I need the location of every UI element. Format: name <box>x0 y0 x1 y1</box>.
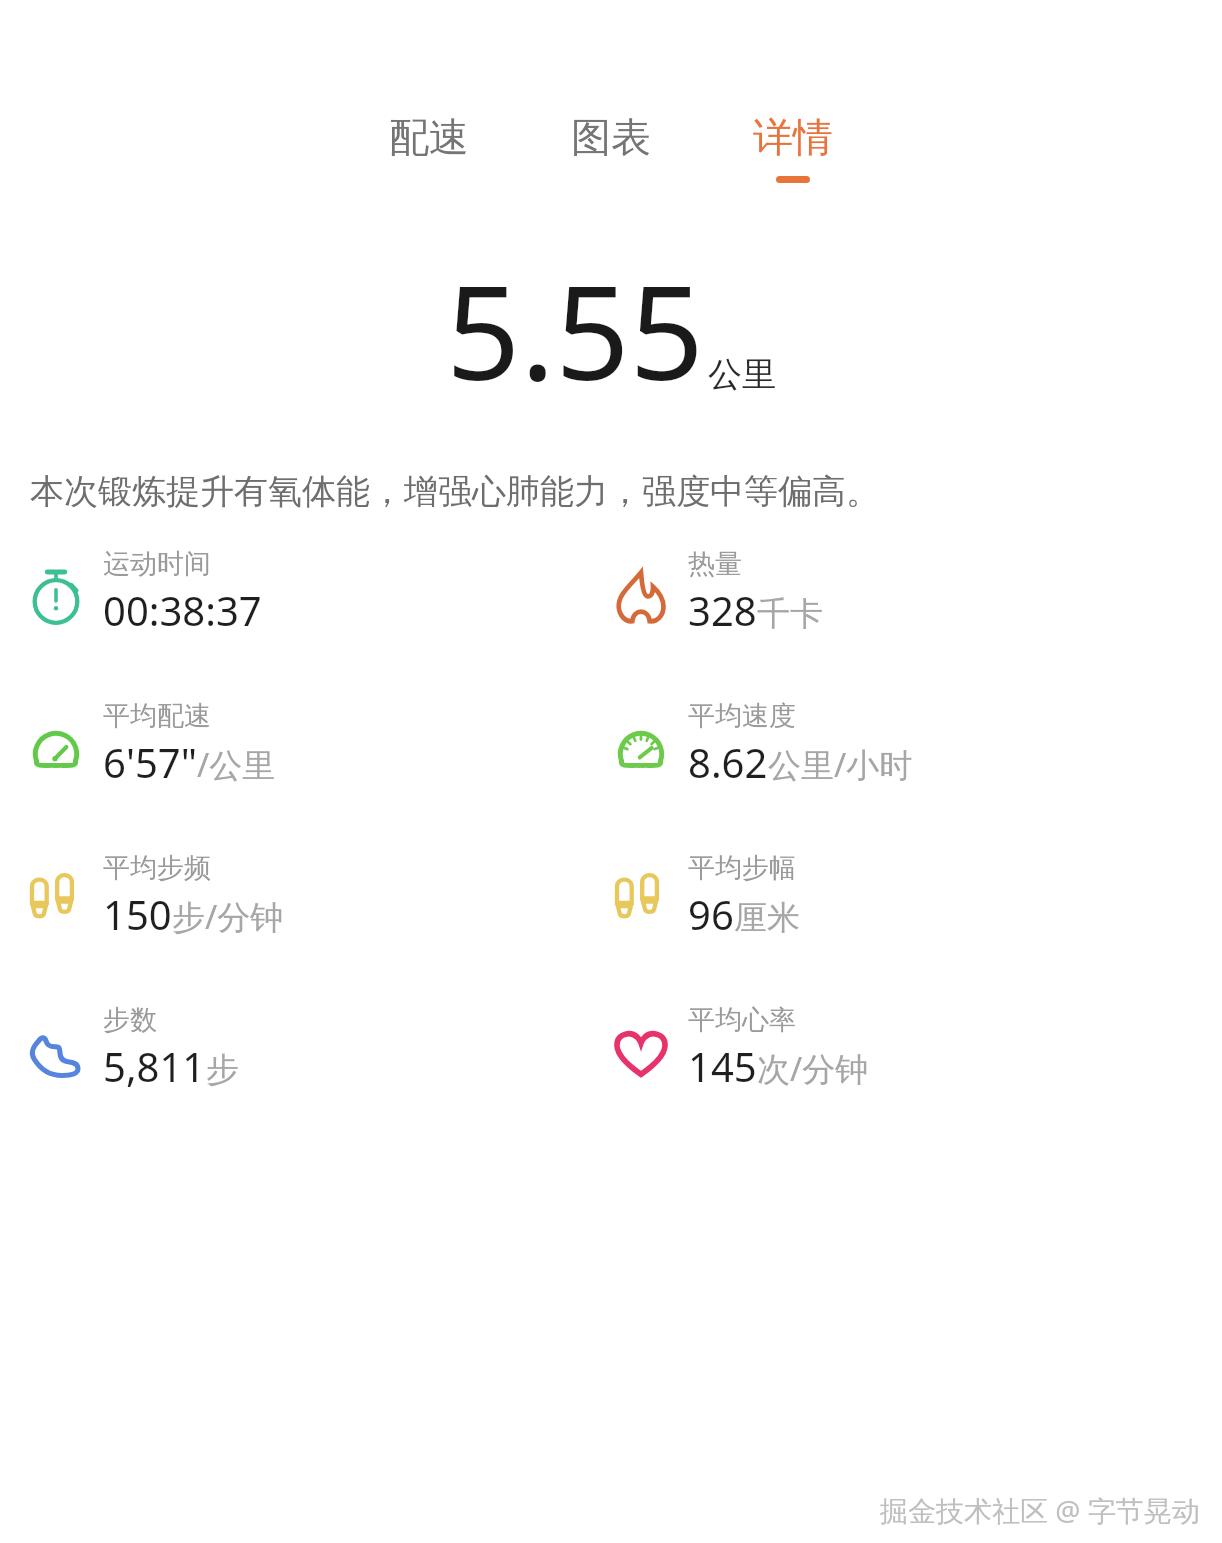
staticText: 本次锻炼提升有氧体能，增强心肺能力，强度中等偏高。 <box>30 470 880 513</box>
staticText: 公里 <box>708 353 776 396</box>
staticText: 平均心率 <box>688 1003 796 1037</box>
other: Average heart rate <box>611 1023 671 1083</box>
staticText: 00:38:37 <box>103 583 262 637</box>
other: Average cadence <box>26 871 86 931</box>
staticText: 步/分钟 <box>172 894 284 939</box>
button[interactable]: 详情 <box>747 112 839 183</box>
other: Average pace <box>26 719 86 779</box>
button[interactable]: Step count <box>26 1003 239 1093</box>
staticText: 公里/小时 <box>768 742 913 787</box>
other: Step count <box>26 1023 86 1083</box>
staticText: 运动时间 <box>103 547 211 581</box>
staticText: 千卡 <box>757 593 823 635</box>
button[interactable]: Average cadence <box>26 851 284 941</box>
button[interactable]: Calories <box>611 547 823 637</box>
staticText: 5.55 <box>446 241 704 418</box>
other: Calories <box>611 567 671 627</box>
button[interactable]: 图表 <box>565 112 657 176</box>
staticText: 8.62 <box>688 735 768 789</box>
staticText: 次/分钟 <box>757 1046 869 1091</box>
staticText: 平均速度 <box>688 699 796 733</box>
staticText: 5,811 <box>103 1039 206 1093</box>
button[interactable]: Average stride <box>611 851 800 941</box>
staticText: 步 <box>206 1049 239 1091</box>
button[interactable]: 配速 <box>383 112 475 176</box>
staticText: 详情 <box>753 112 833 162</box>
staticText: 掘金技术社区 @ 字节晃动 <box>880 1491 1200 1529</box>
staticText: 配速 <box>389 112 469 162</box>
staticText: 厘米 <box>734 897 800 939</box>
staticText: 96 <box>688 887 734 941</box>
button[interactable]: Exercise time <box>26 547 262 637</box>
staticText: 图表 <box>571 112 651 162</box>
other: Average speed <box>611 719 671 779</box>
other: Exercise time <box>26 567 86 627</box>
staticText: 6'57" <box>103 735 197 789</box>
staticText: 145 <box>688 1039 757 1093</box>
staticText: 热量 <box>688 547 742 581</box>
staticText: /公里 <box>197 742 276 787</box>
staticText: 平均步频 <box>103 851 211 885</box>
other: Average stride <box>611 871 671 931</box>
button[interactable]: Average speed <box>611 699 913 789</box>
staticText: 步数 <box>103 1003 157 1037</box>
staticText: 150 <box>103 887 172 941</box>
staticText: 平均步幅 <box>688 851 796 885</box>
button[interactable]: Average heart rate <box>611 1003 869 1093</box>
staticText: 328 <box>688 583 757 637</box>
button[interactable]: Average pace <box>26 699 276 789</box>
staticText: 平均配速 <box>103 699 211 733</box>
